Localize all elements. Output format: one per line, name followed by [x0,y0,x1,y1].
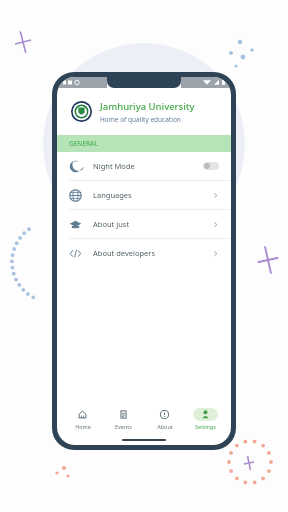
button[interactable]: Night Mode [57,152,231,180]
staticText: Home of quality education [100,115,181,124]
staticText: Events [115,423,132,430]
button[interactable]: About developers [57,239,231,267]
staticText: About [157,423,173,430]
button[interactable]: Home [67,408,98,430]
button[interactable]: Events [108,408,139,430]
button[interactable]: Settings [190,408,221,430]
button[interactable]: Languages [57,181,231,209]
staticText: About just [93,219,130,229]
button[interactable]: Night mode toggle [203,162,219,170]
button[interactable]: About [149,408,180,430]
staticText: Languages [93,190,132,200]
staticText: Home [75,423,91,430]
staticText: Settings [195,423,216,430]
staticText: Jamhuriya University [100,100,195,113]
staticText: About developers [93,248,155,258]
button[interactable]: About just [57,210,231,238]
staticText: Night Mode [93,161,135,171]
staticText: GENERAL [69,139,98,148]
